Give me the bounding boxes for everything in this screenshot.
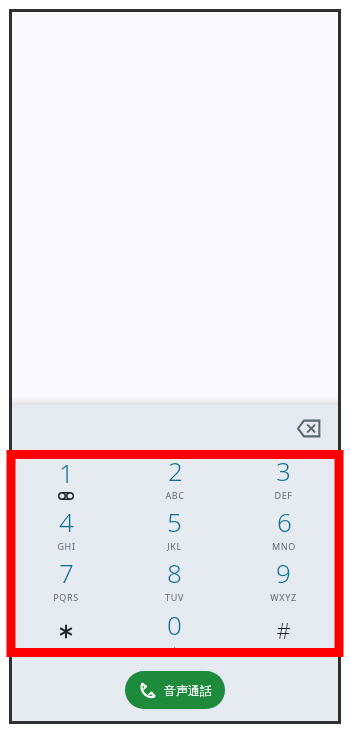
staticText: + [172, 643, 178, 654]
staticText: ABC [165, 489, 185, 501]
staticText: JKL [167, 540, 182, 552]
button[interactable]: 2 [120, 453, 229, 501]
staticText: 1 [59, 455, 74, 490]
button[interactable]: 4 [12, 504, 120, 552]
button[interactable]: 9 [229, 555, 338, 603]
staticText: 0 [167, 607, 182, 642]
staticText: 4 [59, 504, 74, 539]
staticText: WXYZ [270, 591, 297, 603]
staticText: 7 [59, 555, 74, 590]
button[interactable]: 音声通話 [125, 671, 225, 709]
button[interactable]: 3 [229, 453, 338, 501]
staticText: MNO [272, 540, 296, 552]
staticText: 5 [167, 504, 182, 539]
staticText: GHI [57, 540, 76, 552]
button[interactable] [12, 606, 120, 654]
button[interactable]: 1 [12, 453, 120, 501]
staticText: 8 [167, 555, 182, 590]
button[interactable]: Backspace [288, 407, 330, 449]
staticText: 3 [276, 453, 291, 488]
staticText: DEF [274, 489, 293, 501]
staticText: 6 [277, 504, 292, 539]
button[interactable]: 7 [12, 555, 120, 603]
button[interactable]: 6 [229, 504, 338, 552]
button[interactable]: # [229, 606, 338, 654]
staticText: TUV [165, 591, 184, 603]
staticText: PQRS [53, 591, 79, 603]
staticText: 音声通話 [164, 683, 212, 698]
button[interactable]: 8 [120, 555, 229, 603]
staticText: 2 [168, 453, 183, 488]
button[interactable]: 5 [120, 504, 229, 552]
button[interactable]: 0 [120, 606, 229, 654]
staticText: 9 [276, 555, 291, 590]
staticText: # [276, 615, 291, 645]
